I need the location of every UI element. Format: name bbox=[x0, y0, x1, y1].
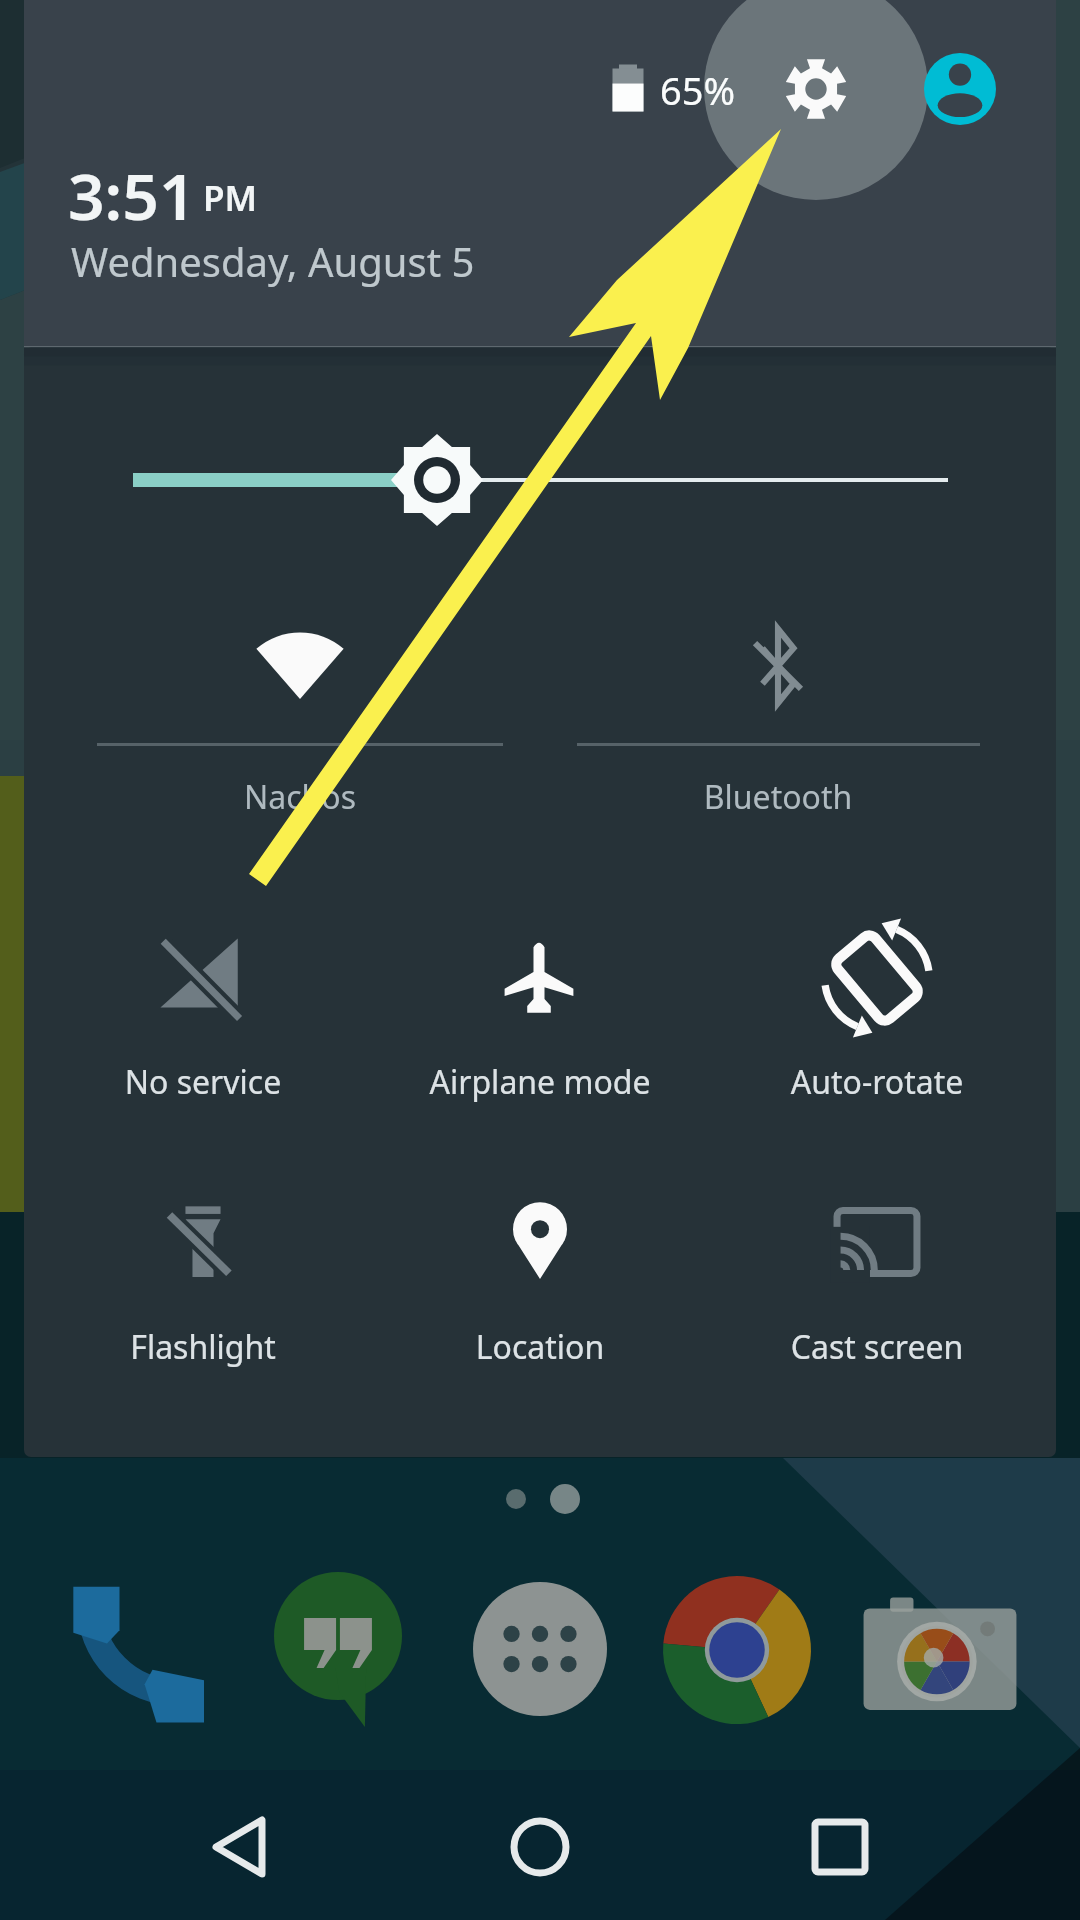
button[interactable]: Auto-rotate bbox=[724, 905, 1030, 1105]
staticText: 65% bbox=[660, 64, 736, 116]
staticText: No service bbox=[3, 1060, 403, 1104]
button[interactable]: Cast screen bbox=[724, 1170, 1030, 1370]
button[interactable]: Chrome bbox=[658, 1560, 818, 1720]
button[interactable]: Recent apps bbox=[780, 1787, 900, 1907]
button[interactable]: Location bbox=[387, 1170, 693, 1370]
staticText: Flashlight bbox=[3, 1325, 403, 1369]
staticText: Nachos bbox=[100, 775, 500, 819]
staticText: 3:51 bbox=[68, 152, 196, 239]
button[interactable]: Airplane mode bbox=[387, 905, 693, 1105]
staticText: Auto-rotate bbox=[677, 1060, 1077, 1104]
button[interactable]: Camera bbox=[860, 1560, 1020, 1720]
staticText: Cast screen bbox=[677, 1325, 1077, 1369]
button[interactable]: Flashlight bbox=[50, 1170, 356, 1370]
staticText: Bluetooth bbox=[578, 775, 978, 819]
button[interactable]: User profile bbox=[918, 47, 1004, 133]
staticText: PM bbox=[203, 174, 258, 222]
button[interactable]: Bluetooth bbox=[577, 600, 980, 810]
button[interactable]: Phone bbox=[60, 1560, 220, 1720]
staticText: Airplane mode bbox=[340, 1060, 740, 1104]
button[interactable]: Settings bbox=[704, 0, 928, 202]
button[interactable]: Home bbox=[480, 1787, 600, 1907]
button[interactable]: Hangouts bbox=[260, 1560, 420, 1720]
staticText: Wednesday, August 5 bbox=[71, 234, 475, 288]
staticText: Location bbox=[340, 1325, 740, 1369]
button[interactable]: No service bbox=[50, 905, 356, 1105]
button[interactable]: Brightness bbox=[110, 432, 970, 528]
button[interactable]: All apps bbox=[460, 1560, 620, 1720]
button[interactable]: Back bbox=[180, 1787, 300, 1907]
button[interactable]: Wi-Fi Nachos bbox=[97, 600, 503, 810]
